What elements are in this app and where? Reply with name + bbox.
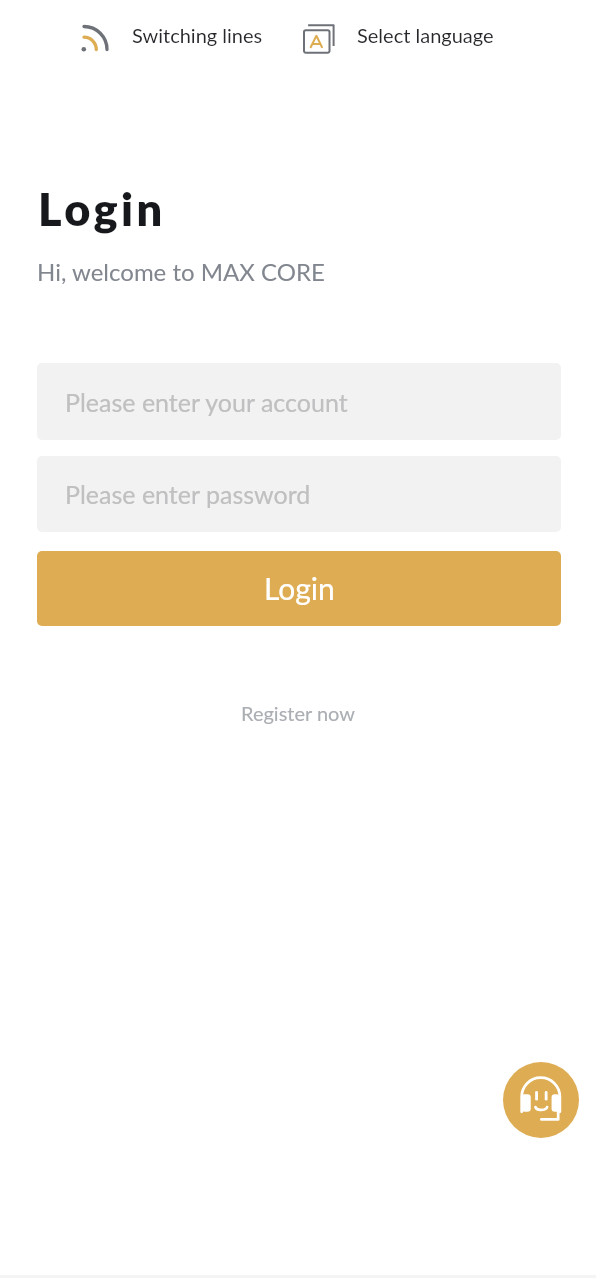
staticText: Please enter password: [65, 479, 311, 509]
button[interactable]: Customer service: [503, 1062, 579, 1138]
button[interactable]: Select language: [298, 14, 496, 56]
button[interactable]: Switching lines: [72, 14, 262, 56]
staticText: Please enter your account: [65, 387, 348, 417]
button[interactable]: Register now: [227, 693, 370, 733]
button[interactable]: Login: [37, 551, 561, 626]
staticText: Hi, welcome to MAX CORE: [37, 257, 325, 286]
staticText: Login: [264, 570, 335, 606]
button[interactable]: Please enter your account: [37, 363, 561, 440]
button[interactable]: Please enter password: [37, 456, 561, 532]
staticText: Switching lines: [132, 23, 263, 47]
staticText: Select language: [357, 23, 494, 47]
staticText: Register now: [241, 701, 356, 725]
staticText: Login: [38, 182, 166, 236]
